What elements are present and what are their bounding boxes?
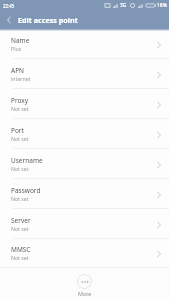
- staticText: Port: [11, 126, 24, 135]
- staticText: Not set: [11, 225, 29, 232]
- staticText: More: [78, 290, 92, 297]
- staticText: Proxy: [11, 96, 29, 105]
- staticText: 3G: [120, 2, 127, 9]
- staticText: 22:45: [3, 3, 15, 9]
- staticText: APN: [11, 66, 25, 75]
- staticText: Name: [11, 36, 30, 45]
- button[interactable]: MMSC: [0, 239, 169, 267]
- staticText: Plus: [11, 45, 22, 52]
- staticText: Username: [11, 156, 43, 165]
- button[interactable]: More: [71, 269, 98, 298]
- staticText: 18%: [157, 2, 167, 9]
- button[interactable]: Username: [0, 149, 169, 179]
- staticText: Edit access point: [18, 15, 78, 25]
- staticText: Password: [11, 186, 41, 195]
- button[interactable]: Server: [0, 209, 169, 239]
- staticText: internet: [11, 75, 31, 82]
- staticText: Not set: [11, 254, 29, 261]
- staticText: Server: [11, 216, 31, 225]
- staticText: Not set: [11, 105, 29, 112]
- button[interactable]: Back: [0, 12, 17, 28]
- staticText: Not set: [11, 165, 29, 172]
- button[interactable]: Proxy: [0, 89, 169, 119]
- button[interactable]: APN: [0, 59, 169, 89]
- staticText: Not set: [11, 195, 29, 202]
- button[interactable]: Name: [0, 29, 169, 59]
- button[interactable]: Port: [0, 119, 169, 149]
- button[interactable]: Password: [0, 179, 169, 209]
- staticText: MMSC: [11, 245, 31, 254]
- staticText: Not set: [11, 135, 29, 142]
